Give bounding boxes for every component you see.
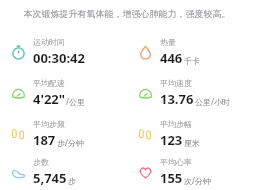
- staticText: 本次锻炼提升有氧体能，增强心肺能力，强度较高。: [14, 8, 240, 19]
- button[interactable]: 平均心率: [127, 157, 254, 187]
- staticText: /公里: [66, 96, 85, 107]
- button[interactable]: 平均步频: [0, 119, 127, 149]
- staticText: 步/分钟: [57, 137, 84, 148]
- staticText: 运动时间: [33, 37, 65, 47]
- staticText: 00:30:42: [33, 49, 85, 67]
- staticText: 热量: [160, 37, 176, 47]
- button[interactable]: 运动时间: [0, 37, 127, 67]
- staticText: 步: [68, 176, 76, 186]
- button[interactable]: 平均配速: [0, 78, 127, 108]
- button[interactable]: 平均步幅: [127, 119, 254, 149]
- staticText: 187: [33, 131, 56, 149]
- staticText: 千卡: [184, 56, 200, 66]
- button[interactable]: 热量: [127, 37, 254, 67]
- staticText: 平均速度: [160, 78, 192, 88]
- staticText: 次/分钟: [184, 175, 211, 186]
- staticText: 446: [160, 49, 183, 67]
- staticText: 平均心率: [160, 157, 192, 167]
- staticText: 13.76: [160, 90, 194, 108]
- staticText: 平均配速: [33, 78, 65, 88]
- staticText: 5,745: [33, 169, 67, 187]
- staticText: 厘米: [184, 138, 200, 148]
- button[interactable]: 步数: [0, 157, 127, 187]
- staticText: 123: [160, 131, 183, 149]
- button[interactable]: 平均速度: [127, 78, 254, 108]
- staticText: 155: [160, 169, 183, 187]
- staticText: 公里/小时: [195, 96, 230, 107]
- staticText: 步数: [33, 157, 49, 167]
- staticText: 平均步频: [33, 119, 65, 129]
- staticText: 4'22": [33, 90, 65, 108]
- staticText: 平均步幅: [160, 119, 192, 129]
